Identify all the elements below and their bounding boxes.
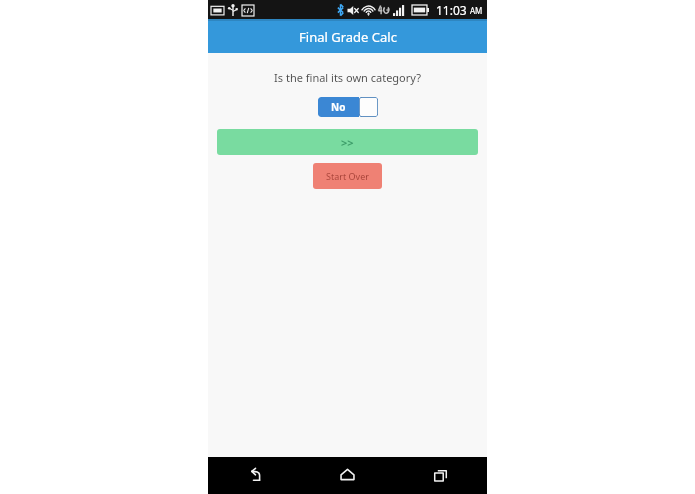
button[interactable]: Start Over	[313, 163, 382, 189]
button[interactable]: Back	[208, 457, 301, 494]
staticText: Final Grade Calc	[299, 28, 397, 46]
staticText: 11:03	[436, 2, 467, 18]
button[interactable]: >>	[217, 129, 478, 155]
button[interactable]: Recents	[394, 457, 487, 494]
staticText: Start Over	[326, 170, 369, 182]
staticText: >>	[341, 135, 354, 150]
staticText: No	[331, 100, 346, 114]
staticText: AM	[470, 5, 483, 16]
button[interactable]: Home	[301, 457, 394, 494]
button[interactable]: No	[318, 97, 378, 117]
staticText: Is the final its own category?	[274, 70, 421, 85]
